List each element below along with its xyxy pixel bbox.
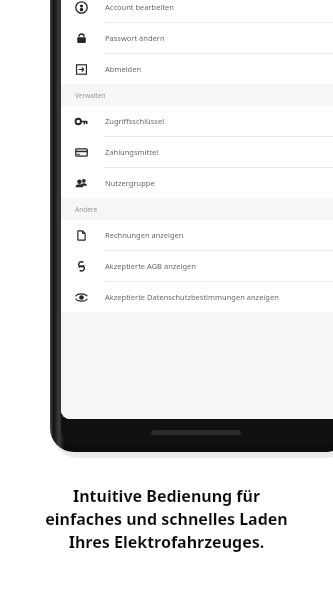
button[interactable]: Akzeptierte AGB anzeigen: [61, 251, 333, 281]
button[interactable]: Zugriffsschlüssel: [61, 106, 333, 136]
staticText: Rechnungen anzeigen: [105, 230, 184, 240]
staticText: Account bearbeiten: [105, 2, 174, 12]
button[interactable]: Rechnungen anzeigen: [61, 220, 333, 250]
staticText: Nutzergruppe: [105, 178, 155, 188]
button[interactable]: Passwort ändern: [61, 23, 333, 53]
staticText: Akzeptierte AGB anzeigen: [105, 261, 196, 271]
staticText: Abmelden: [105, 64, 142, 74]
staticText: Passwort ändern: [105, 33, 165, 43]
button[interactable]: Akzeptierte Datenschutzbestimmungen anze…: [61, 282, 333, 312]
button[interactable]: Zahlungsmittel: [61, 137, 333, 167]
button[interactable]: Account bearbeiten: [61, 0, 333, 22]
staticText: Intuitive Bedienung für einfaches und sc…: [45, 485, 288, 553]
staticText: Zugriffsschlüssel: [105, 116, 165, 126]
staticText: Andere: [75, 205, 98, 214]
button[interactable]: Nutzergruppe: [61, 168, 333, 198]
staticText: Zahlungsmittel: [105, 147, 159, 157]
staticText: Verwalten: [75, 91, 106, 100]
staticText: Akzeptierte Datenschutzbestimmungen anze…: [105, 292, 279, 302]
button[interactable]: Abmelden: [61, 54, 333, 84]
